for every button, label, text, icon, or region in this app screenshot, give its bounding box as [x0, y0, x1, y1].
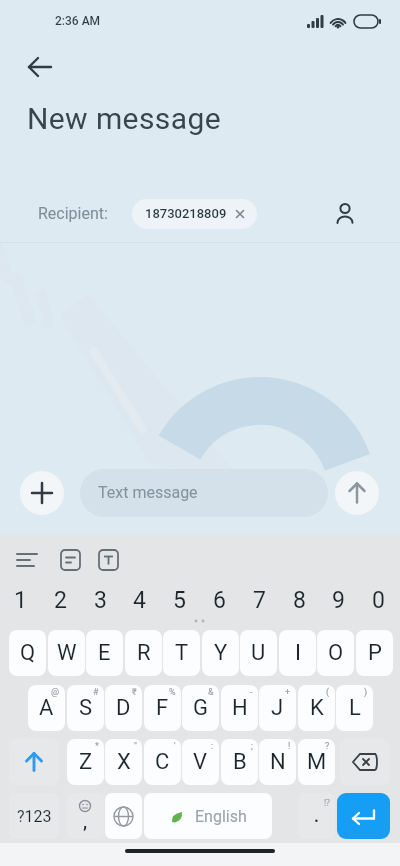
staticText: New message	[27, 101, 221, 136]
button[interactable]	[20, 48, 60, 88]
staticText: U	[251, 640, 266, 666]
staticText: O	[328, 640, 344, 666]
button[interactable]: English	[144, 793, 272, 839]
button[interactable]: .	[298, 793, 335, 839]
staticText: Text message	[98, 483, 198, 502]
button[interactable]: 18730218809	[132, 199, 257, 229]
button[interactable]: 2	[42, 582, 78, 618]
button[interactable]: B	[221, 739, 258, 785]
button[interactable]: C	[144, 739, 181, 785]
button[interactable]: N	[259, 739, 296, 785]
staticText: P	[368, 640, 382, 666]
staticText: G	[193, 695, 208, 721]
button[interactable]: G	[182, 685, 219, 731]
button[interactable]	[20, 471, 64, 515]
button[interactable]: 1	[2, 582, 38, 618]
button[interactable]: 7	[241, 582, 277, 618]
staticText: Q	[20, 640, 36, 666]
staticText: ?	[325, 741, 330, 752]
staticText: 1	[14, 587, 27, 614]
staticText: D	[116, 695, 131, 721]
staticText: .	[314, 806, 319, 826]
staticText: English	[195, 807, 247, 826]
staticText: :	[211, 741, 214, 752]
button[interactable]	[105, 793, 142, 839]
button[interactable]	[337, 793, 390, 839]
staticText: T	[175, 640, 189, 666]
button[interactable]: R	[125, 630, 162, 676]
staticText: 2:36 AM	[55, 14, 101, 28]
staticText: M	[307, 749, 327, 775]
button[interactable]: 4	[121, 582, 157, 618]
button[interactable]: J	[259, 685, 296, 731]
staticText: *	[95, 741, 99, 752]
button[interactable]: Q	[9, 630, 46, 676]
staticText: K	[310, 695, 324, 721]
button[interactable]: L	[336, 685, 373, 731]
staticText: 3	[94, 587, 107, 614]
button[interactable]: F	[144, 685, 181, 731]
staticText: '	[174, 741, 176, 752]
button[interactable]: H	[221, 685, 258, 731]
button[interactable]: ?123	[9, 793, 59, 839]
button[interactable]: K	[298, 685, 335, 731]
staticText: R	[137, 640, 151, 666]
button[interactable]	[335, 471, 379, 515]
staticText: V	[193, 749, 208, 775]
button[interactable]	[60, 549, 81, 571]
button[interactable]: 3	[82, 582, 118, 618]
button[interactable]: 5	[161, 582, 197, 618]
button[interactable]: T	[163, 630, 200, 676]
staticText: I	[295, 640, 301, 666]
staticText: "	[134, 741, 137, 752]
staticText: 6	[213, 587, 226, 614]
button[interactable]: E	[86, 630, 123, 676]
staticText: 8	[293, 587, 306, 614]
staticText: A	[39, 695, 54, 721]
staticText: N	[270, 749, 286, 775]
button[interactable]: W	[48, 630, 85, 676]
button[interactable]: A	[28, 685, 65, 731]
staticText: ;	[251, 741, 253, 752]
button[interactable]: 0	[360, 582, 396, 618]
button[interactable]: O	[317, 630, 354, 676]
button[interactable]	[98, 549, 119, 571]
staticText: W	[57, 640, 77, 666]
button[interactable]: V	[182, 739, 219, 785]
button[interactable]: D	[105, 685, 142, 731]
button[interactable]	[14, 548, 40, 572]
button[interactable]	[9, 739, 59, 785]
button[interactable]: ,	[67, 793, 104, 839]
button[interactable]: 9	[320, 582, 356, 618]
button[interactable]: U	[240, 630, 277, 676]
staticText: 0	[372, 587, 385, 614]
button[interactable]: 8	[281, 582, 317, 618]
button[interactable]: X	[105, 739, 142, 785]
button[interactable]: M	[298, 739, 335, 785]
button[interactable]: 6	[201, 582, 237, 618]
button[interactable]: Y	[202, 630, 239, 676]
staticText: +	[285, 687, 291, 698]
staticText: !?	[324, 797, 330, 808]
button[interactable]: Text message	[80, 469, 328, 517]
staticText: ,	[83, 812, 88, 832]
staticText: (	[326, 687, 330, 698]
staticText: B	[233, 749, 247, 775]
button[interactable]: I	[279, 630, 316, 676]
staticText: 7	[253, 587, 266, 614]
staticText: H	[232, 695, 248, 721]
staticText: ?123	[17, 807, 52, 826]
button[interactable]: Z	[67, 739, 104, 785]
staticText: 9	[332, 587, 345, 614]
staticText: 4	[133, 587, 146, 614]
staticText: J	[271, 695, 284, 721]
staticText: C	[155, 749, 170, 775]
button[interactable]: P	[356, 630, 393, 676]
staticText: ₹	[132, 687, 137, 698]
button[interactable]: S	[67, 685, 104, 731]
button[interactable]	[330, 199, 360, 229]
button[interactable]	[340, 739, 390, 785]
staticText: 5	[173, 587, 186, 614]
staticText: )	[364, 687, 368, 698]
staticText: #	[93, 687, 99, 698]
